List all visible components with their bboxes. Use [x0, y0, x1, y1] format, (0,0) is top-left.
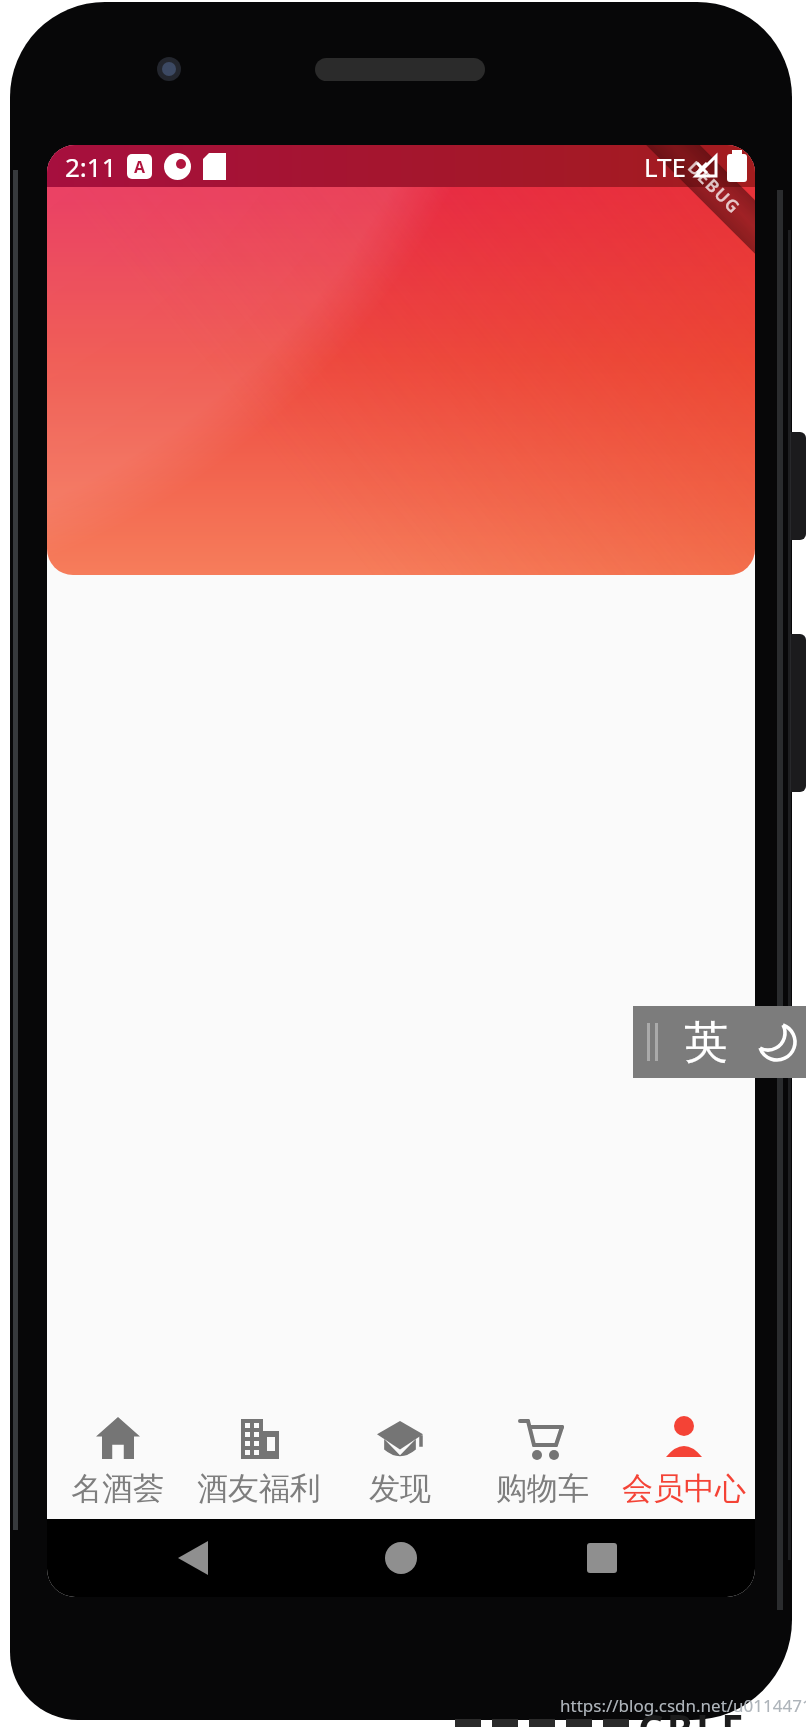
- staticText: 购物车: [496, 1469, 589, 1508]
- staticText: 发现: [369, 1469, 431, 1508]
- button[interactable]: 会员中心: [613, 1404, 755, 1519]
- button[interactable]: 酒友福利: [188, 1404, 329, 1519]
- button[interactable]: [587, 1543, 617, 1573]
- staticText: 名酒荟: [71, 1469, 164, 1508]
- staticText: 酒友福利: [197, 1469, 321, 1508]
- staticText: A: [134, 156, 146, 178]
- staticText: 2:11: [65, 149, 117, 184]
- button[interactable]: 英: [633, 1006, 806, 1078]
- staticText: 英: [684, 1015, 728, 1070]
- staticText: https://blog.csdn.net/u011447164: [560, 1694, 806, 1717]
- button[interactable]: 名酒荟: [47, 1404, 188, 1519]
- button[interactable]: 发现: [329, 1404, 471, 1519]
- staticText: LTE: [644, 149, 687, 184]
- staticText: DEBUG: [683, 156, 746, 219]
- button[interactable]: [385, 1542, 417, 1574]
- staticText: 会员中心: [622, 1469, 746, 1508]
- button[interactable]: 购物车: [471, 1404, 613, 1519]
- staticText: CRLF: [638, 1700, 747, 1727]
- button[interactable]: [178, 1541, 208, 1575]
